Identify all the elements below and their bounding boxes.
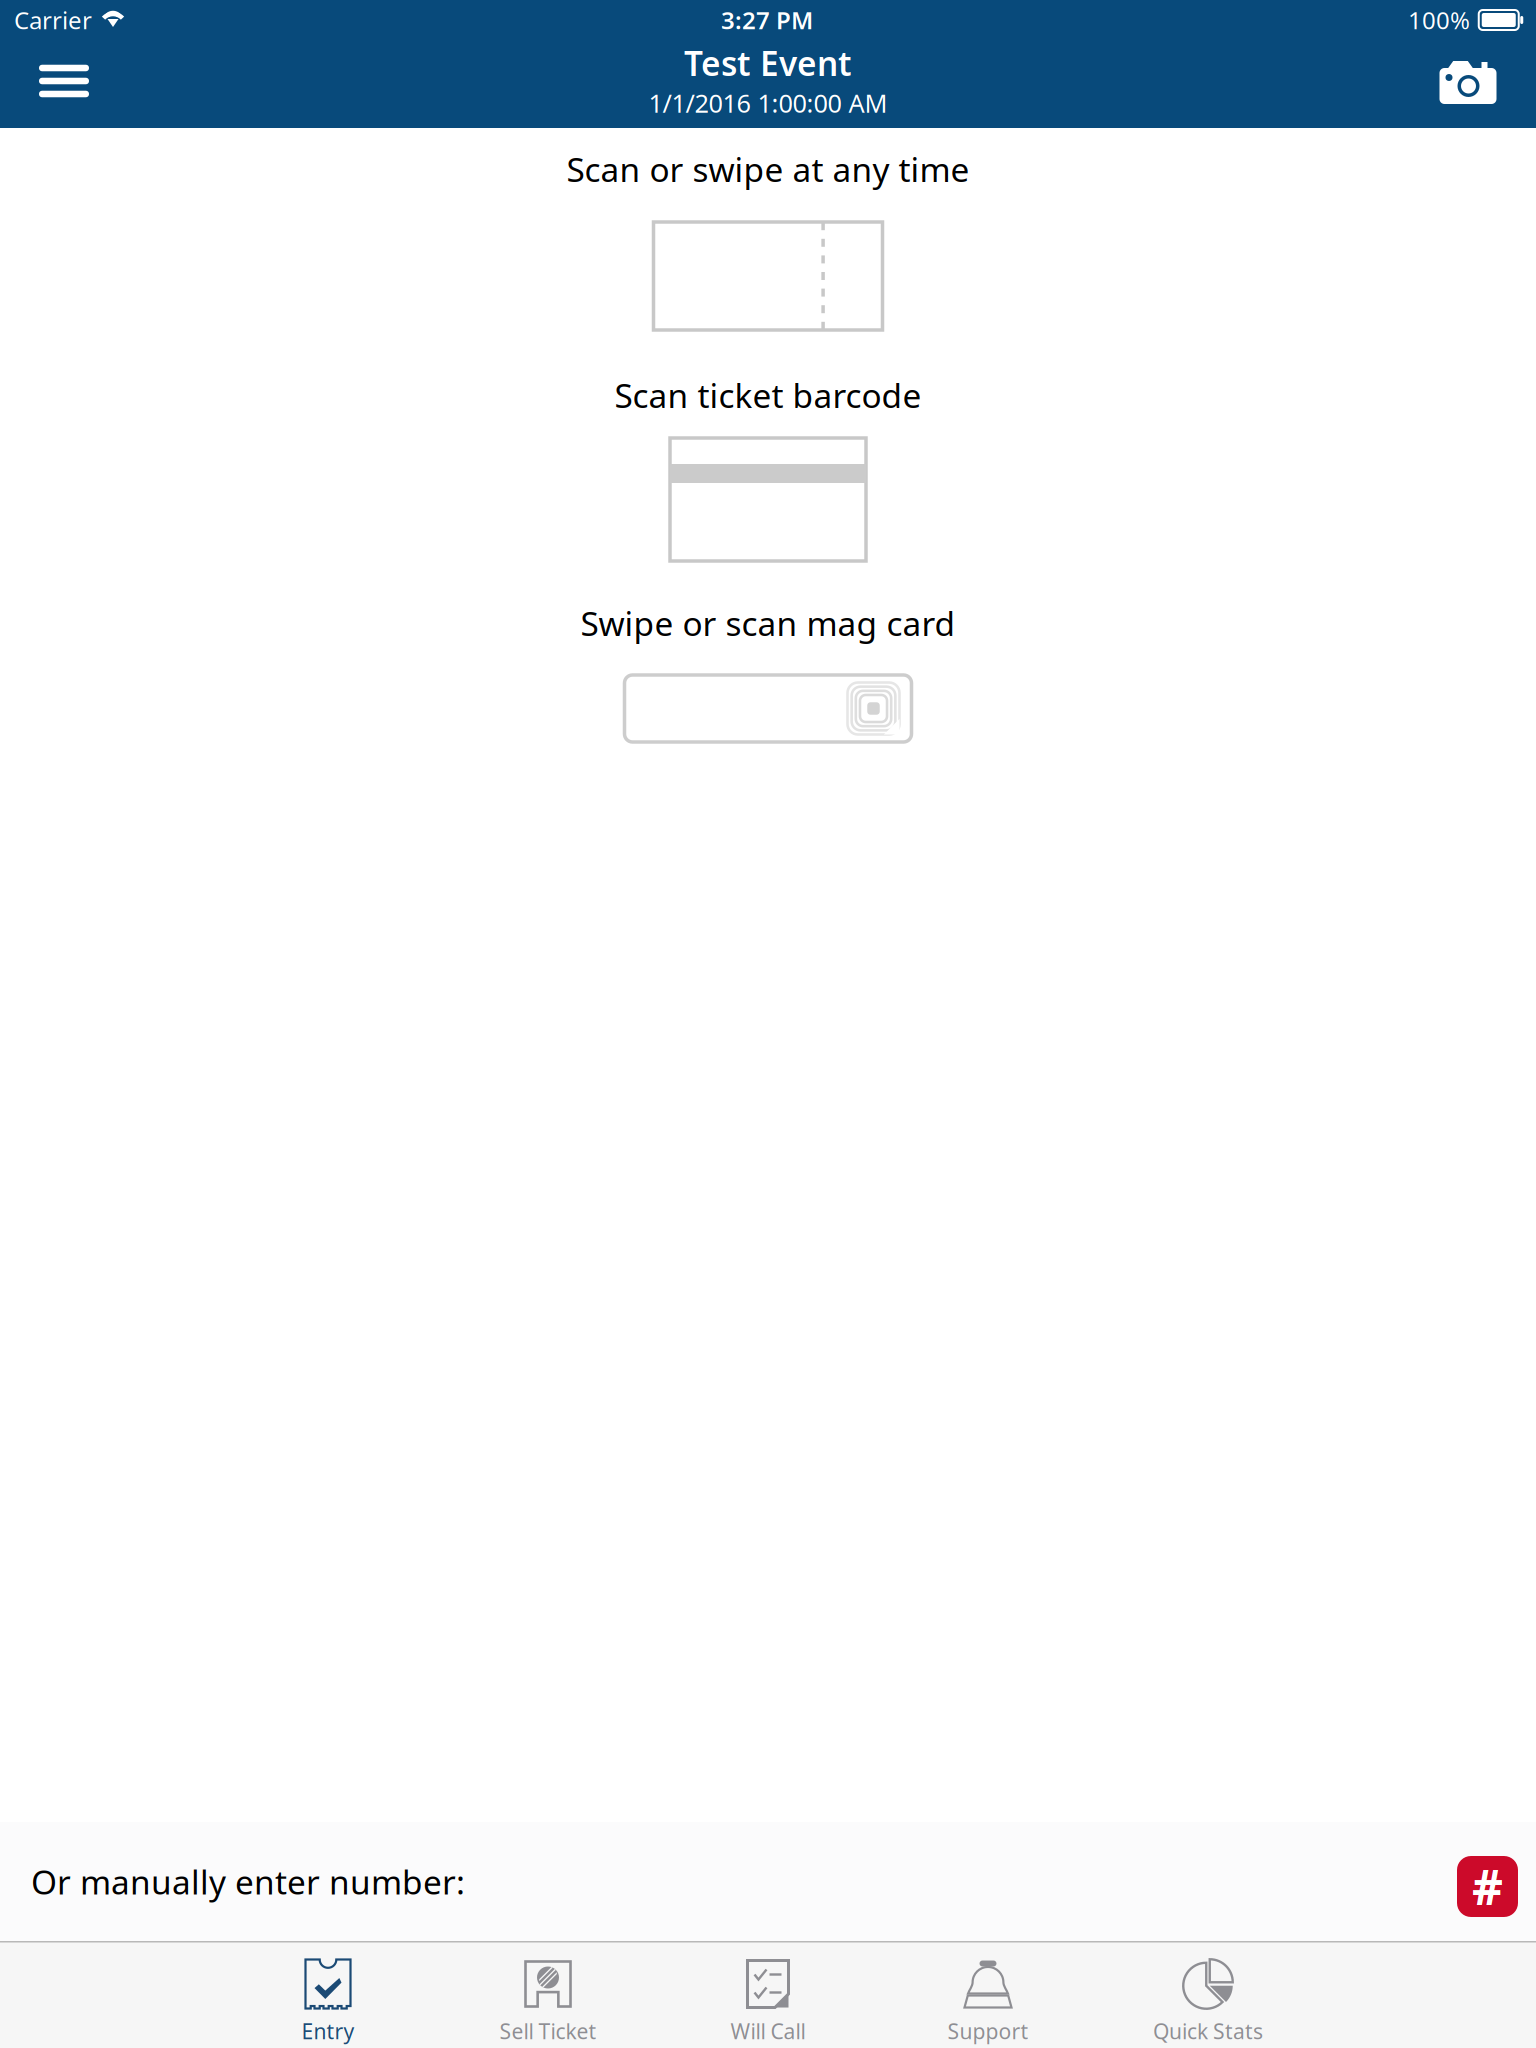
staticText: Will Call bbox=[730, 2017, 805, 2045]
staticText: Test Event bbox=[684, 41, 852, 85]
button[interactable]: Sell Ticket bbox=[448, 1941, 648, 2048]
staticText: 3:27 PM bbox=[721, 4, 813, 36]
staticText: Support bbox=[947, 2017, 1028, 2045]
button[interactable]: Menu bbox=[18, 37, 110, 131]
staticText: Scan or swipe at any time bbox=[566, 147, 969, 191]
button[interactable]: Will Call bbox=[668, 1941, 868, 2048]
button[interactable]: Entry bbox=[228, 1941, 428, 2048]
staticText: Carrier bbox=[14, 4, 92, 36]
staticText: Sell Ticket bbox=[499, 2017, 596, 2045]
button[interactable]: Support bbox=[888, 1941, 1088, 2048]
staticText: Swipe or scan mag card bbox=[580, 601, 955, 645]
button[interactable]: Quick Stats bbox=[1108, 1941, 1308, 2048]
staticText: Entry bbox=[301, 2017, 354, 2045]
staticText: Scan ticket barcode bbox=[614, 373, 921, 417]
staticText: Or manually enter number: bbox=[31, 1859, 465, 1904]
staticText: # bbox=[1472, 1855, 1503, 1918]
button[interactable]: Manual entry bbox=[1457, 1846, 1518, 1917]
staticText: 1/1/2016 1:00:00 AM bbox=[648, 86, 887, 120]
staticText: Quick Stats bbox=[1153, 2017, 1263, 2045]
staticText: 100% bbox=[1408, 4, 1470, 36]
button[interactable]: Camera bbox=[1422, 38, 1514, 130]
